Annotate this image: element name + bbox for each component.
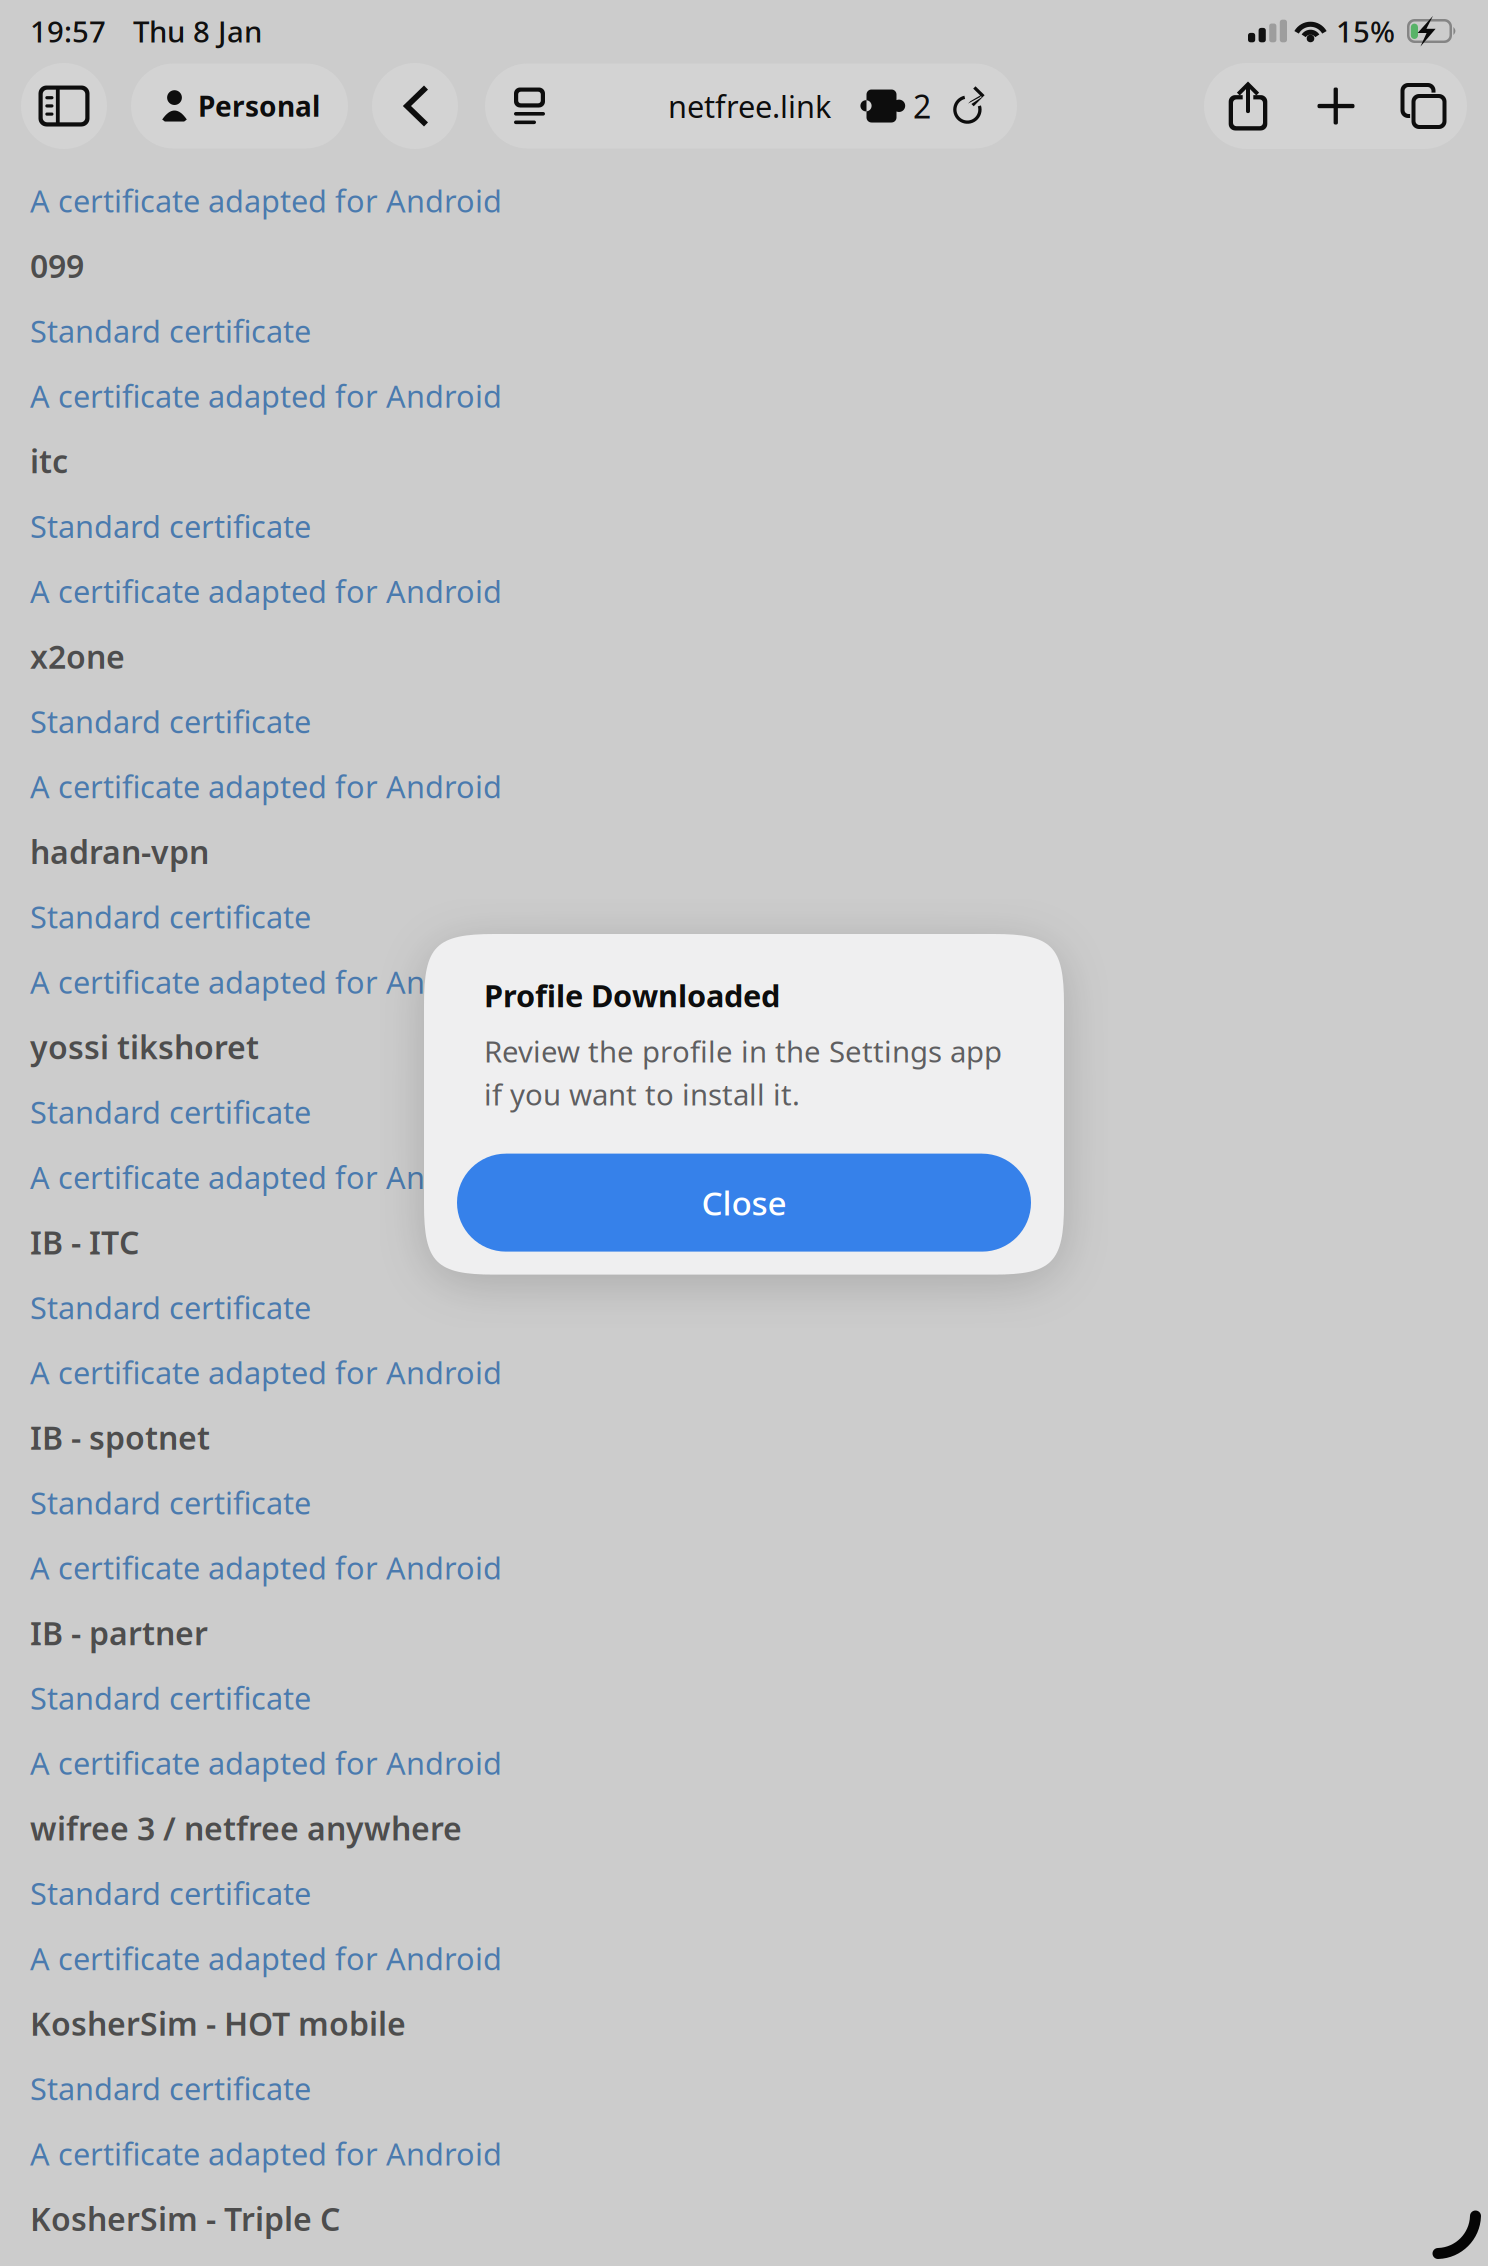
staticText: 15% — [1336, 11, 1395, 50]
button[interactable]: Standard certificate — [0, 2251, 1488, 2266]
staticText: KosherSim - Triple C — [30, 2197, 340, 2240]
button[interactable]: A certificate adapted for Android — [0, 2121, 1488, 2186]
staticText: netfree.link — [668, 86, 831, 126]
button[interactable]: Standard certificate — [0, 298, 1488, 363]
staticText: if you want to install it. — [484, 1075, 800, 1114]
button[interactable]: Standard certificate — [0, 689, 1488, 754]
staticText: Standard certificate — [30, 896, 311, 937]
staticText: Standard certificate — [30, 310, 311, 351]
staticText: A certificate adapted for Android — [30, 2133, 502, 2174]
staticText: Standard certificate — [30, 2068, 311, 2109]
staticText: IB - partner — [30, 1611, 208, 1654]
button[interactable]: A certificate adapted for Android — [0, 168, 1488, 233]
staticText: wifree 3 / netfree anywhere — [30, 1807, 462, 1849]
staticText: A certificate adapted for Android — [30, 1743, 502, 1783]
staticText: Standard certificate — [30, 1873, 311, 1913]
button[interactable]: Standard certificate — [0, 2056, 1488, 2121]
button[interactable]: Show Tabs — [1380, 63, 1467, 149]
button[interactable]: A certificate adapted for Android — [0, 559, 1488, 624]
button[interactable]: Share — [1204, 63, 1292, 149]
staticText: hadran-vpn — [30, 830, 209, 873]
staticText: KosherSim - HOT mobile — [30, 2002, 406, 2045]
staticText: x2one — [30, 635, 125, 677]
staticText: A certificate adapted for Android — [30, 571, 502, 611]
staticText: A certificate adapted for Android — [30, 1547, 502, 1588]
staticText: Close — [701, 1180, 786, 1225]
button[interactable]: A certificate adapted for Android — [0, 1926, 1488, 1991]
staticText: IB - spotnet — [30, 1416, 210, 1459]
button[interactable]: A certificate adapted for Android — [0, 363, 1488, 428]
button[interactable]: A certificate adapted for Android — [0, 1730, 1488, 1795]
staticText: A certificate adapted for Android — [30, 1938, 502, 1979]
staticText: Standard certificate — [30, 701, 311, 742]
staticText: 099 — [30, 244, 84, 287]
button[interactable]: Personal — [131, 63, 348, 148]
staticText: Standard certificate — [30, 1287, 311, 1328]
button[interactable]: A certificate adapted for Android — [0, 1535, 1488, 1600]
button[interactable]: A certificate adapted for Android — [0, 1340, 1488, 1405]
staticText: itc — [30, 440, 68, 482]
button[interactable]: Standard certificate — [0, 1275, 1488, 1340]
button[interactable]: Standard certificate — [0, 884, 1488, 949]
staticText: Review the profile in the Settings app — [484, 1032, 1002, 1071]
staticText: Standard certificate — [30, 1092, 311, 1132]
button[interactable]: Standard certificate — [0, 1470, 1488, 1535]
button[interactable]: Show Sidebar — [21, 63, 107, 149]
button[interactable]: Back — [372, 63, 458, 149]
button[interactable]: Standard certificate — [0, 1861, 1488, 1926]
staticText: Standard certificate — [30, 1677, 311, 1718]
button[interactable]: netfree.link — [485, 63, 1017, 148]
staticText: Standard certificate — [30, 1482, 311, 1523]
staticText: yossi tikshoret — [30, 1026, 259, 1068]
button[interactable]: Standard certificate — [0, 493, 1488, 559]
staticText: Personal — [198, 87, 320, 125]
button[interactable]: Close — [457, 1154, 1031, 1252]
button[interactable]: A certificate adapted for Android — [0, 754, 1488, 819]
button[interactable]: A certificate adapted for Android — [0, 949, 1488, 1014]
staticText: A certificate adapted for Android — [30, 1157, 502, 1197]
staticText: Profile Downloaded — [484, 975, 780, 1016]
button[interactable]: Standard certificate — [0, 1079, 1488, 1144]
staticText: A certificate adapted for Android — [30, 766, 502, 807]
button[interactable]: Standard certificate — [0, 1665, 1488, 1730]
staticText: Thu 8 Jan — [133, 11, 262, 50]
button[interactable]: A certificate adapted for Android — [0, 1144, 1488, 1210]
staticText: A certificate adapted for Android — [30, 375, 502, 416]
staticText: Standard certificate — [30, 506, 311, 546]
staticText: 2 — [913, 85, 931, 127]
staticText: A certificate adapted for Android — [30, 961, 502, 1002]
staticText: 19:57 — [30, 11, 106, 50]
staticText: IB - ITC — [30, 1221, 139, 1263]
button[interactable]: New Tab — [1292, 63, 1380, 149]
staticText: A certificate adapted for Android — [30, 180, 502, 221]
staticText: A certificate adapted for Android — [30, 1352, 502, 1393]
